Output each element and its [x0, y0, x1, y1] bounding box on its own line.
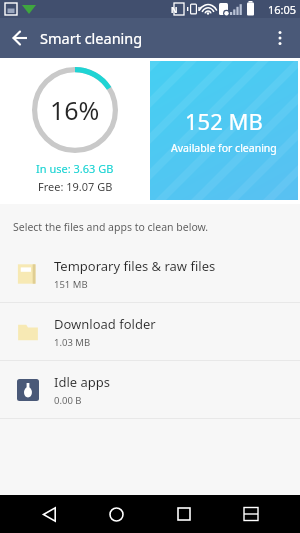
- staticText: 151 MB: [54, 278, 88, 291]
- button[interactable]: Back: [30, 495, 68, 533]
- staticText: Free: 19.07 GB: [38, 179, 113, 194]
- staticText: N: [171, 4, 178, 15]
- staticText: In use: 3.63 GB: [36, 161, 114, 176]
- button[interactable]: Recent apps: [165, 495, 203, 533]
- staticText: Idle apps: [54, 373, 110, 391]
- staticText: Temporary files & raw files: [54, 257, 216, 275]
- staticText: Download folder: [54, 315, 156, 333]
- staticText: 1.03 MB: [54, 336, 91, 349]
- staticText: 152 MB: [185, 106, 263, 136]
- staticText: Select the files and apps to clean below…: [13, 220, 209, 234]
- button[interactable]: Home: [97, 495, 135, 533]
- button[interactable]: 152 MB: [150, 61, 298, 200]
- button[interactable]: Temporary files & raw files: [0, 245, 300, 302]
- staticText: 0.00 B: [54, 394, 82, 407]
- staticText: 16%: [50, 93, 100, 127]
- button[interactable]: More options: [260, 18, 300, 58]
- button[interactable]: Download folder: [0, 303, 300, 360]
- button[interactable]: Back: [0, 18, 40, 58]
- staticText: 16:05: [268, 2, 297, 17]
- button[interactable]: Idle apps: [0, 361, 300, 418]
- button[interactable]: Split screen: [232, 495, 270, 533]
- staticText: Smart cleaning: [40, 28, 143, 48]
- staticText: Available for cleaning: [171, 141, 277, 155]
